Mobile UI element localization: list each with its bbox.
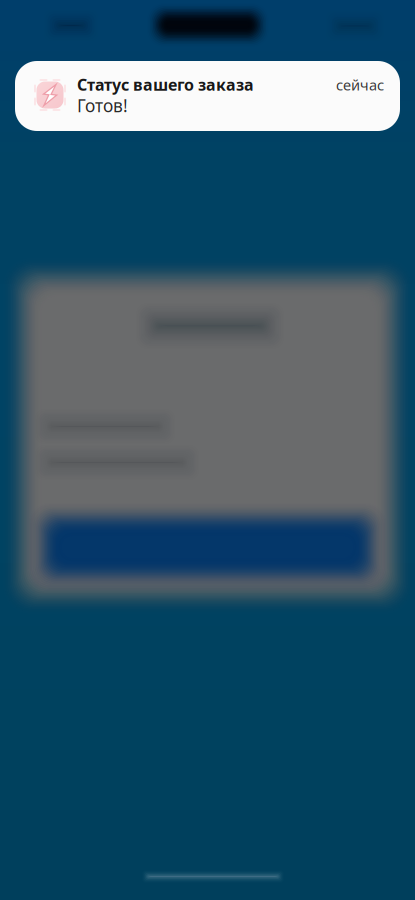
staticText: сейчас <box>336 75 384 94</box>
staticText: Статус вашего заказа <box>77 74 254 95</box>
staticText: Готов! <box>77 94 128 117</box>
button[interactable]: Статус вашего заказа <box>15 61 400 131</box>
